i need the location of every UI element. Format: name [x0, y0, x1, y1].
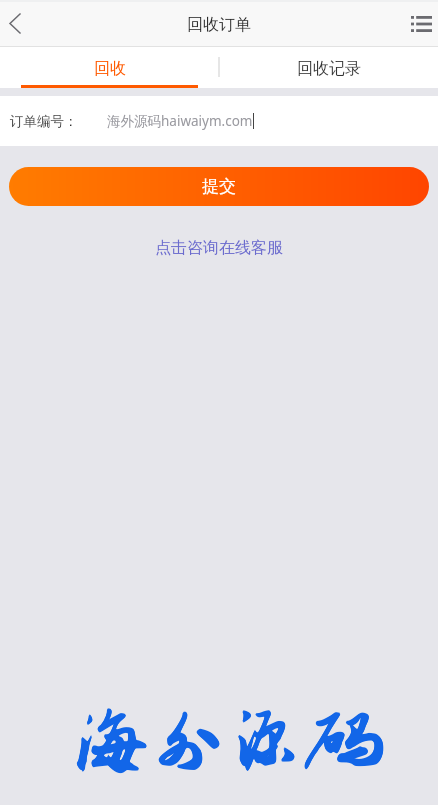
- staticText: 回收订单: [187, 15, 251, 35]
- staticText: 回收记录: [297, 59, 361, 79]
- button[interactable]: Menu: [398, 0, 438, 46]
- button[interactable]: 回收记录: [219, 46, 438, 88]
- staticText: 提交: [202, 176, 236, 197]
- staticText: 回收: [94, 59, 126, 79]
- staticText: 订单编号：: [10, 113, 78, 130]
- button[interactable]: 点击咨询在线客服: [151, 236, 287, 260]
- button[interactable]: 订单编号：: [0, 96, 438, 146]
- button[interactable]: Back: [0, 0, 40, 46]
- button[interactable]: 提交: [9, 167, 429, 206]
- staticText: 海外源码haiwaiym.com: [107, 112, 253, 130]
- button[interactable]: 回收: [0, 46, 219, 88]
- staticText: 点击咨询在线客服: [155, 238, 283, 258]
